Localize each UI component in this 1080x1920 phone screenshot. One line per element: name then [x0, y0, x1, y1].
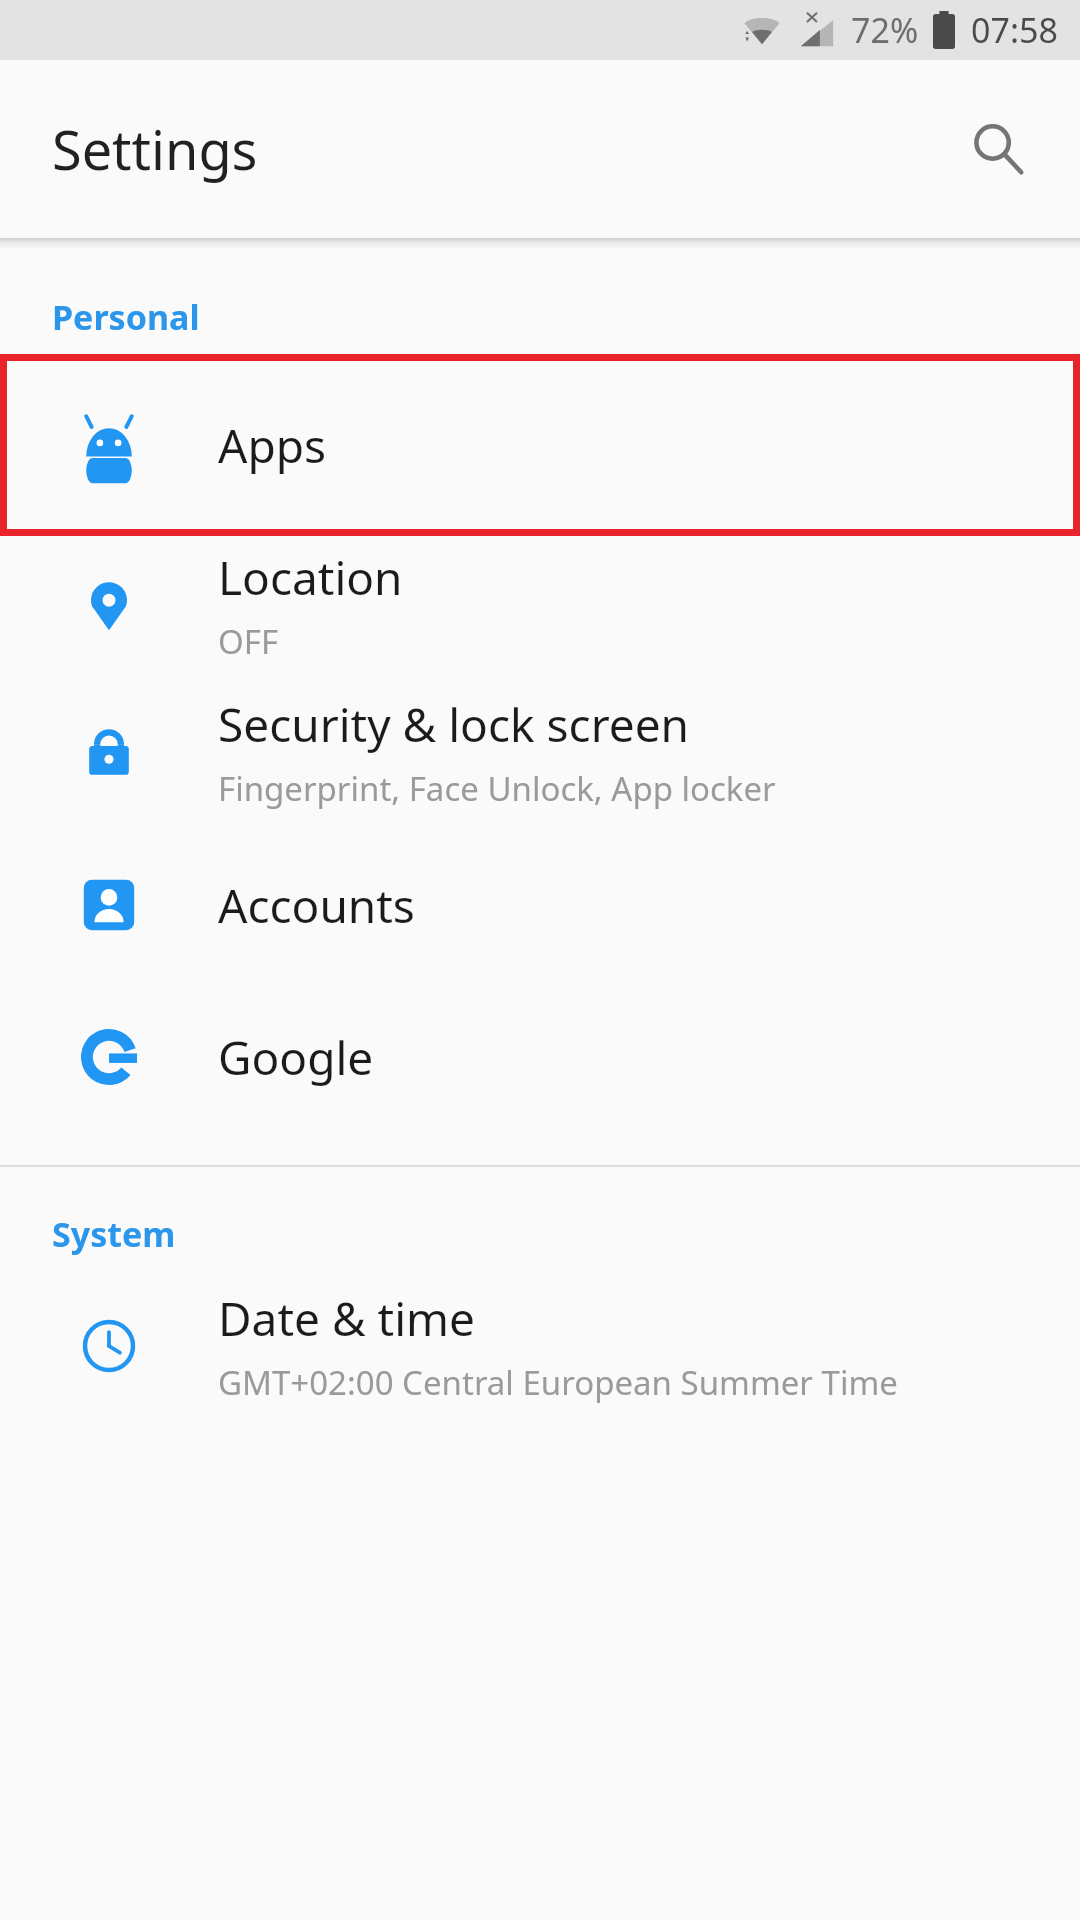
staticText: System [52, 1211, 176, 1257]
staticText: Location [218, 546, 403, 609]
button[interactable]: Google [0, 981, 1080, 1133]
staticText: Google [218, 1026, 374, 1089]
staticText: Apps [218, 414, 327, 477]
staticText: OFF [218, 619, 279, 664]
staticText: 07:58 [971, 7, 1058, 53]
button[interactable]: Search [950, 101, 1046, 197]
button[interactable]: Security & lock screen [0, 674, 1080, 829]
staticText: Date & time [218, 1287, 475, 1350]
staticText: Security & lock screen [218, 693, 690, 756]
button[interactable]: Date & time [0, 1271, 1080, 1421]
staticText: 72% [851, 7, 919, 53]
button[interactable]: Accounts [0, 829, 1080, 981]
staticText: Settings [52, 112, 258, 186]
button[interactable]: Location [0, 536, 1080, 674]
button[interactable]: Apps [0, 354, 1080, 536]
staticText: Accounts [218, 874, 415, 937]
staticText: Fingerprint, Face Unlock, App locker [218, 766, 776, 811]
staticText: Personal [52, 294, 200, 340]
staticText: GMT+02:00 Central European Summer Time [218, 1360, 898, 1405]
